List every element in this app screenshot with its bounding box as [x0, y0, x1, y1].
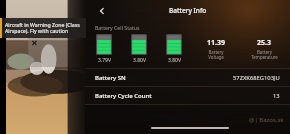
staticText: Battery Voltage	[208, 49, 224, 61]
button[interactable]: Battery SN	[85, 69, 290, 86]
staticText: 3.79V	[98, 57, 111, 64]
staticText: Battery Cycle Count	[95, 92, 152, 100]
staticText: 57ZXK68EG103JU	[233, 74, 280, 82]
staticText: 25.3	[257, 38, 271, 48]
staticText: 3.80V	[168, 57, 181, 64]
button[interactable]: Battery Cycle Count	[85, 87, 290, 104]
staticText: Battery Cell Status	[95, 24, 140, 31]
staticText: 3.80V	[133, 57, 146, 64]
button[interactable]: Back	[94, 3, 110, 19]
staticText: 11.39	[207, 38, 225, 48]
staticText: Battery Temperature	[251, 49, 278, 61]
staticText: Battery SN	[95, 74, 126, 82]
button[interactable]: Aircraft in Warning Zone (Class Airspace…	[0, 18, 86, 38]
staticText: Battery Info	[169, 6, 207, 15]
staticText: 13	[273, 92, 280, 100]
staticText: Aircraft in Warning Zone (Class Airspace…	[5, 21, 80, 35]
staticText: @| Bazos.sk	[249, 116, 284, 124]
